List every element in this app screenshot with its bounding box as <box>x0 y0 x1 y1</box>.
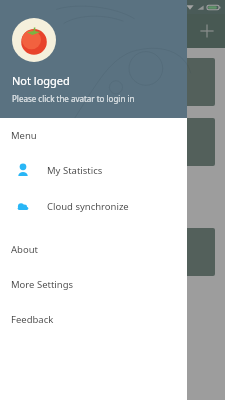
staticText: My Statistics <box>47 164 103 177</box>
staticText: Feedback <box>11 313 54 326</box>
staticText: About <box>11 243 38 256</box>
staticText: More Settings <box>11 278 74 291</box>
staticText: Not logged <box>12 73 70 88</box>
button[interactable]: COMPLETED <box>10 228 215 276</box>
button[interactable]: START <box>10 118 215 166</box>
button[interactable]: My Statistics <box>0 157 187 183</box>
button[interactable]: Add <box>196 20 218 42</box>
button[interactable]: START <box>10 58 215 106</box>
button[interactable]: About <box>0 236 187 262</box>
staticText: Please click the avatar to login in <box>12 93 135 104</box>
button[interactable]: Login avatar <box>12 18 56 62</box>
staticText: Menu <box>11 129 37 142</box>
button[interactable]: Feedback <box>0 306 187 332</box>
button[interactable]: More Settings <box>0 271 187 297</box>
staticText: Cloud synchronize <box>47 200 129 213</box>
button[interactable]: Cloud synchronize <box>0 193 187 219</box>
